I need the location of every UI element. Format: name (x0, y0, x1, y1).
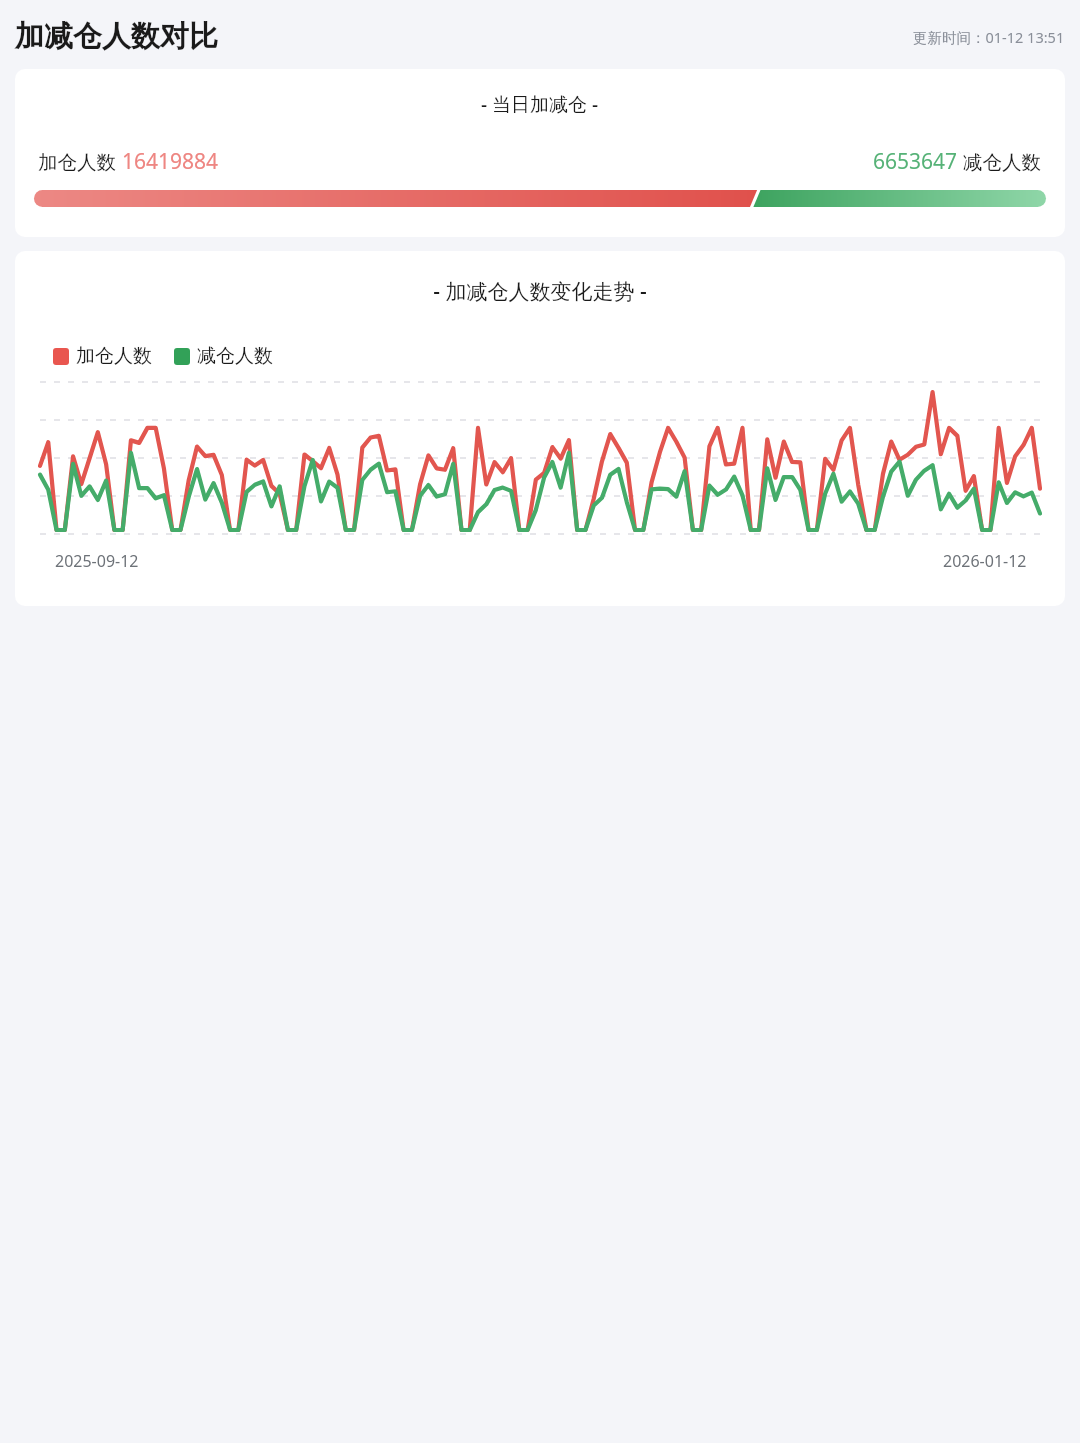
staticText: 加仓人数 (38, 148, 122, 175)
staticText: 减仓人数 (197, 344, 273, 368)
button[interactable]: - 当日加减仓 - (15, 69, 1065, 237)
staticText: 加仓人数 (76, 344, 152, 368)
staticText: 减仓人数 (958, 148, 1042, 175)
staticText: 16419884 (122, 147, 219, 176)
button[interactable]: - 加减仓人数变化走势 - (15, 251, 1065, 606)
staticText: 更新时间：01-12 13:51 (913, 27, 1065, 47)
staticText: 加减仓人数对比 (15, 18, 218, 55)
staticText: - 当日加减仓 - (481, 91, 599, 117)
staticText: 6653647 (873, 147, 958, 176)
staticText: 2025-09-12 (55, 550, 139, 572)
staticText: 2026-01-12 (943, 550, 1027, 572)
staticText: - 加减仓人数变化走势 - (433, 277, 647, 306)
